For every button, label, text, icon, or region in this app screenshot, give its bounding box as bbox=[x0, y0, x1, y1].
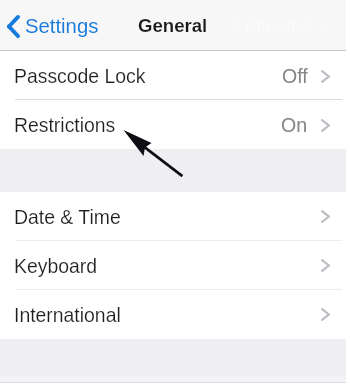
staticText: International bbox=[14, 304, 121, 326]
staticText: Passcode Lock bbox=[14, 65, 146, 87]
other: Back to Settings bbox=[7, 15, 20, 38]
staticText: On bbox=[281, 114, 308, 136]
staticText: Off bbox=[282, 65, 308, 87]
button[interactable]: Keyboard bbox=[0, 241, 346, 290]
staticText: Restrictions bbox=[14, 114, 116, 136]
button[interactable]: Date & Time bbox=[0, 192, 346, 241]
button[interactable]: International bbox=[0, 290, 346, 339]
button[interactable]: Passcode Lock bbox=[0, 51, 346, 100]
button[interactable]: Restrictions bbox=[0, 100, 346, 149]
staticText: General bbox=[138, 15, 208, 36]
staticText: Keyboard bbox=[14, 255, 98, 277]
button[interactable]: Back to Settings bbox=[0, 6, 107, 46]
staticText: Date & Time bbox=[14, 206, 121, 228]
staticText: Settings bbox=[25, 15, 99, 38]
